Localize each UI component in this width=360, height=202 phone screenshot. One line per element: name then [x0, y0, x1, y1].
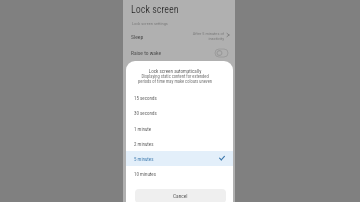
- button[interactable]: 5 minutes: [126, 151, 233, 166]
- button[interactable]: Raise to wake: [123, 45, 235, 60]
- button[interactable]: 10 minutes: [126, 166, 233, 181]
- other: Raise to wake switch, off: [215, 49, 228, 57]
- other: Open sleep options: [226, 33, 230, 37]
- staticText: 10 minutes: [134, 171, 156, 177]
- staticText: 5 minutes: [134, 156, 154, 162]
- staticText: Raise to wake: [131, 50, 161, 56]
- staticText: Lock screen automatically: [126, 68, 224, 74]
- button[interactable]: Cancel: [135, 189, 226, 202]
- staticText: Lock screen settings: [132, 21, 168, 26]
- button[interactable]: 1 minute: [126, 121, 233, 136]
- staticText: 1 minute: [134, 126, 152, 132]
- staticText: Cancel: [173, 193, 188, 199]
- staticText: Sleep: [131, 34, 144, 41]
- staticText: After 5 minutes of inactivity: [184, 31, 224, 41]
- button[interactable]: 2 minutes: [126, 136, 233, 151]
- button[interactable]: Sleep: [123, 28, 235, 44]
- staticText: Displaying static content for extended p…: [126, 74, 224, 84]
- staticText: Lock screen: [131, 4, 179, 16]
- staticText: 30 seconds: [134, 110, 157, 116]
- button[interactable]: 30 seconds: [126, 105, 233, 120]
- staticText: 15 seconds: [134, 95, 157, 101]
- staticText: 2 minutes: [134, 141, 154, 147]
- button[interactable]: 15 seconds: [126, 90, 233, 105]
